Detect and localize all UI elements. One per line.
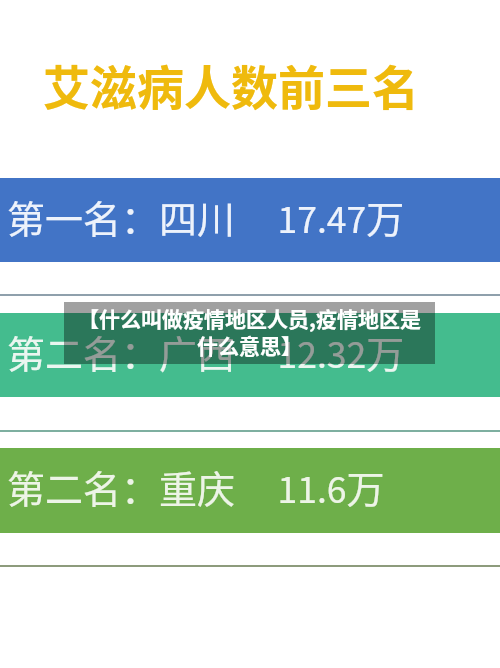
staticText: 第二名：重庆 11.6万 [7, 459, 385, 514]
button[interactable]: 第一名：四川 17.47万 [0, 178, 500, 262]
staticText: 第一名：四川 17.47万 [7, 189, 405, 244]
staticText: 第二名：广西 12.32万 [7, 324, 405, 379]
staticText: 艾滋病人数前三名 [43, 50, 419, 118]
button[interactable]: 第二名：广西 12.32万 [0, 313, 500, 397]
staticText: 【什么叫做疫情地区人员,疫情地区是 什么意思】 [64, 303, 435, 360]
button[interactable]: 第二名：重庆 11.6万 [0, 448, 500, 533]
